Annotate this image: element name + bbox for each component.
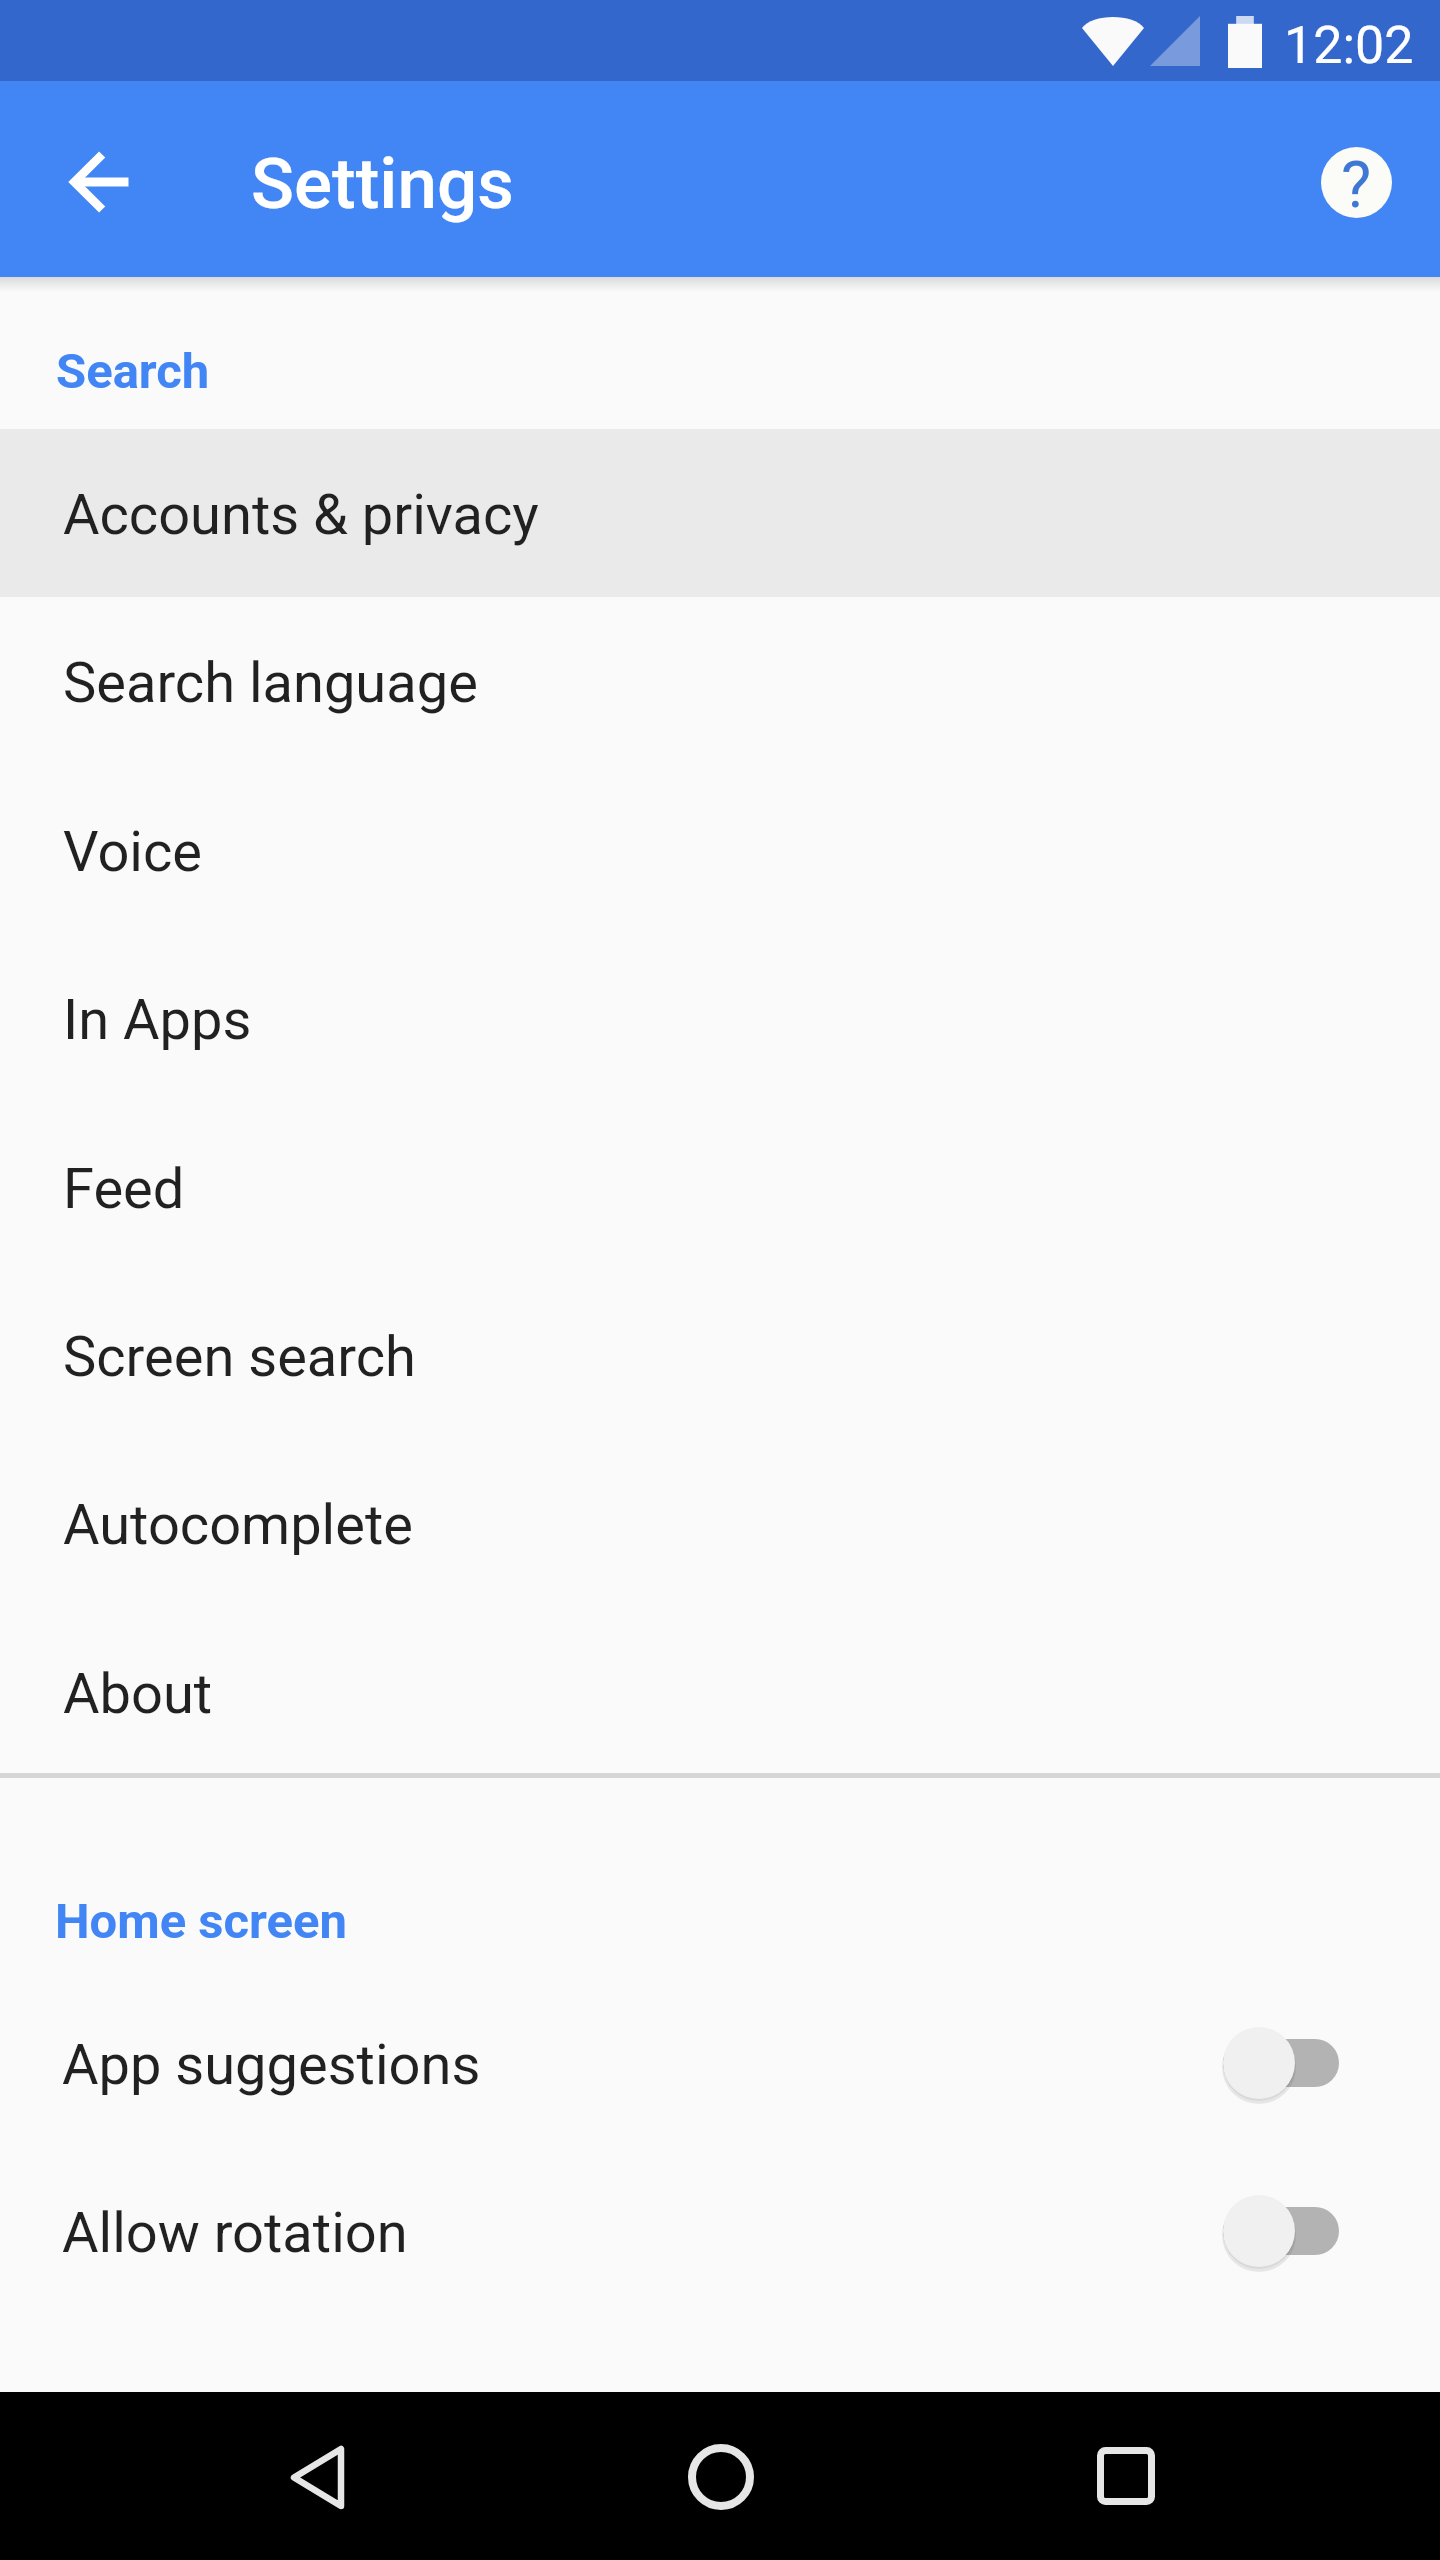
staticText: Accounts & privacy (63, 482, 539, 548)
button[interactable]: Allow rotation (0, 2147, 1440, 2315)
staticText: App suggestions (62, 2032, 481, 2098)
staticText: Allow rotation (62, 2200, 408, 2266)
button[interactable]: App suggestions (0, 1979, 1440, 2147)
staticText: Voice (63, 819, 202, 885)
button[interactable]: Autocomplete (0, 1439, 1440, 1607)
button[interactable]: Home (625, 2393, 817, 2560)
staticText: ? (1341, 148, 1372, 218)
staticText: Screen search (63, 1324, 416, 1390)
staticText: Settings (251, 142, 514, 225)
staticText: Feed (63, 1156, 185, 1222)
button[interactable]: Recents (1030, 2392, 1222, 2560)
button[interactable]: About (0, 1608, 1440, 1776)
staticText: Home screen (55, 1893, 347, 1950)
staticText: Search language (63, 650, 478, 716)
button[interactable]: Back (221, 2393, 413, 2560)
button[interactable]: Feed (0, 1103, 1440, 1271)
button[interactable]: In Apps (0, 934, 1440, 1102)
staticText: Autocomplete (63, 1492, 413, 1558)
staticText: Search (56, 343, 210, 400)
staticText: 12:02 (1284, 15, 1414, 76)
button[interactable]: Search language (0, 597, 1440, 765)
staticText: In Apps (63, 987, 252, 1053)
staticText: About (63, 1661, 213, 1727)
button[interactable]: Back (25, 107, 169, 251)
button[interactable]: Help (1284, 110, 1428, 254)
button[interactable]: Voice (0, 766, 1440, 934)
button[interactable]: Screen search (0, 1271, 1440, 1439)
button[interactable]: Accounts & privacy (0, 429, 1440, 597)
